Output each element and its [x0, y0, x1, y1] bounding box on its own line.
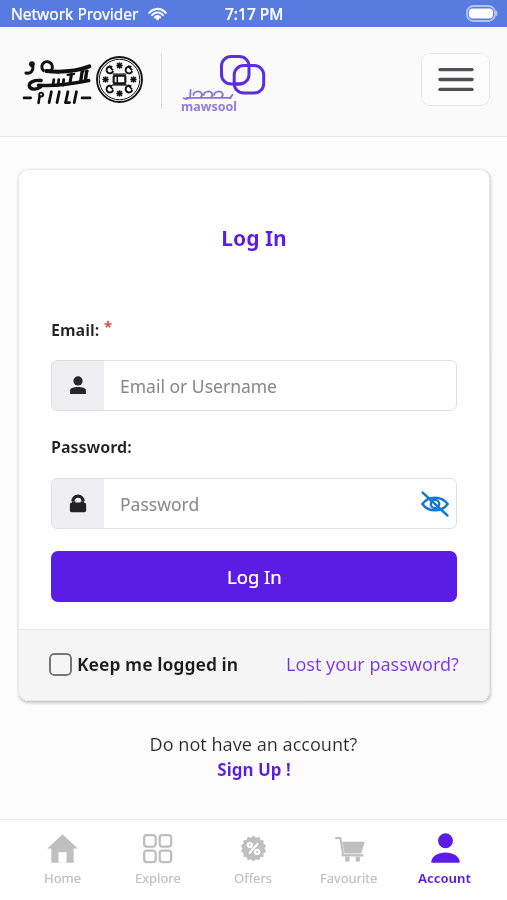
staticText: Log In [18, 224, 490, 253]
button[interactable]: Password [51, 478, 457, 529]
staticText: Explore [135, 869, 181, 887]
staticText: Password [120, 492, 200, 516]
staticText: Account [418, 869, 472, 887]
staticText: Password: [51, 436, 132, 458]
staticText: * [100, 316, 113, 336]
button[interactable]: Show password [420, 489, 450, 519]
button[interactable]: Lost your password? [286, 652, 459, 677]
button[interactable]: Offers [205, 820, 301, 900]
button[interactable]: Home [15, 820, 110, 900]
staticText: Network Provider [11, 3, 139, 24]
staticText: Do not have an account? [0, 732, 507, 757]
button[interactable]: Keep me logged in [49, 652, 239, 676]
staticText: Log In [227, 564, 282, 589]
button[interactable]: Explore [110, 820, 205, 900]
staticText: Offers [234, 869, 273, 887]
button[interactable]: Menu [421, 53, 490, 106]
button[interactable]: Sign Up ! [217, 758, 291, 781]
staticText: Email or Username [120, 374, 277, 398]
staticText: mawsool [181, 98, 238, 115]
button[interactable]: Email or Username [51, 360, 457, 411]
button[interactable]: Favourite [301, 820, 397, 900]
button[interactable]: Log In [51, 551, 457, 602]
staticText: 7:17 PM [225, 3, 284, 24]
button[interactable]: Account [397, 820, 493, 900]
staticText: Email: [51, 319, 100, 341]
staticText: Keep me logged in [77, 652, 239, 676]
staticText: Home [44, 869, 81, 887]
staticText: Favourite [320, 869, 378, 887]
